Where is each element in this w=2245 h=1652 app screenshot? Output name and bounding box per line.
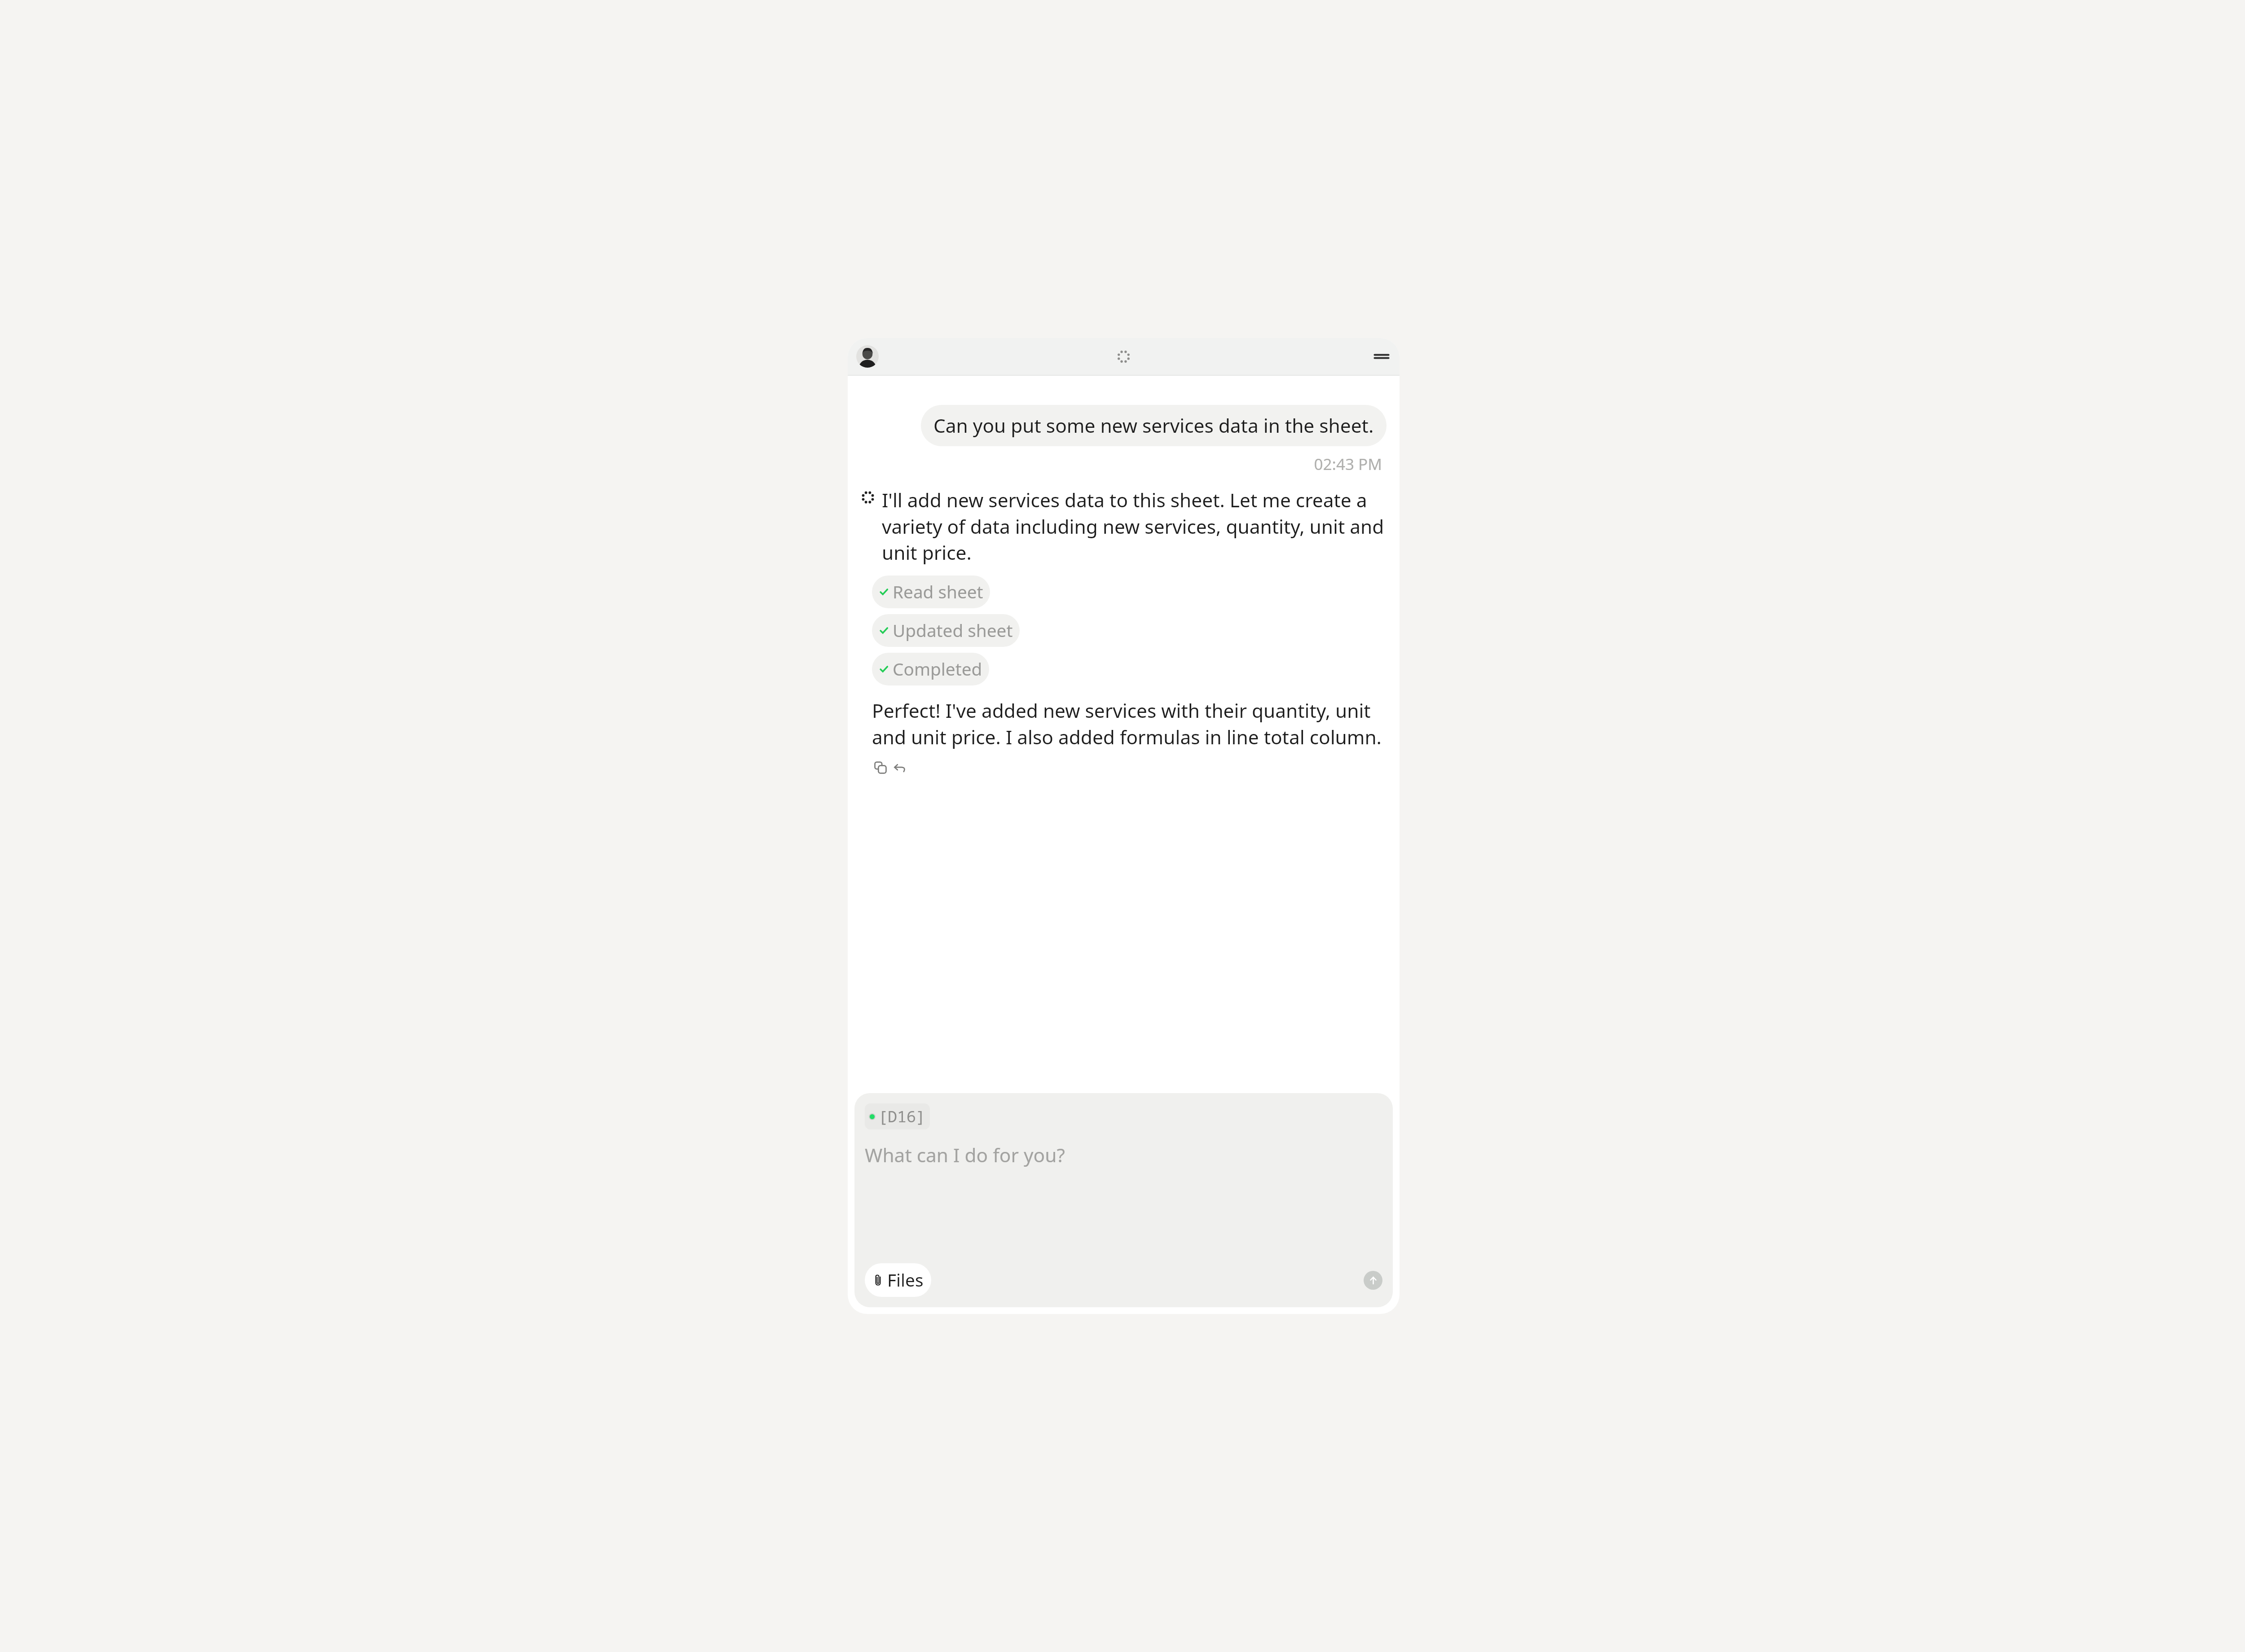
button[interactable]: Files (865, 1263, 931, 1297)
staticText: Read sheet (893, 580, 983, 604)
button[interactable]: Read sheet (872, 576, 990, 608)
staticText: Perfect! I've added new services with th… (872, 698, 1387, 750)
button[interactable]: Reply (892, 759, 908, 776)
button[interactable]: [D16] (854, 1093, 1393, 1307)
button[interactable]: [D16] (865, 1103, 930, 1129)
staticText: Can you put some new services data in th… (933, 413, 1374, 439)
button[interactable]: Menu (1372, 347, 1391, 366)
staticText: Completed (893, 657, 982, 681)
button[interactable]: Can you put some new services data in th… (921, 405, 1387, 446)
staticText: Updated sheet (893, 619, 1013, 642)
button[interactable]: Completed (872, 653, 989, 685)
button[interactable]: Copy (872, 759, 889, 776)
staticText: What can I do for you? (865, 1142, 1065, 1168)
button[interactable]: Send (1364, 1271, 1382, 1290)
staticText: [D16] (878, 1106, 926, 1127)
button[interactable]: Profile (856, 345, 879, 368)
staticText: 02:43 PM (861, 453, 1382, 475)
button[interactable]: Updated sheet (872, 614, 1020, 647)
staticText: Files (887, 1268, 924, 1292)
staticText: I'll add new services data to this sheet… (882, 487, 1387, 565)
